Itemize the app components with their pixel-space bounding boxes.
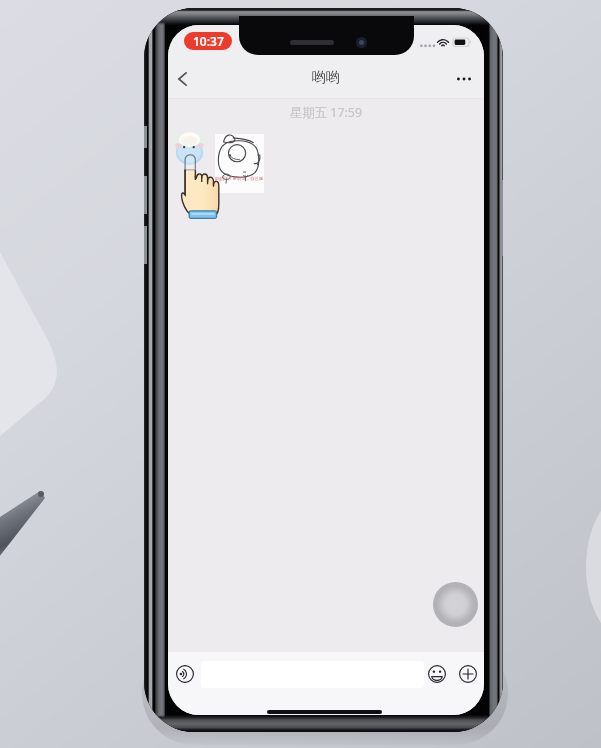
button[interactable]: More options	[446, 61, 482, 97]
button[interactable]: Back	[168, 61, 200, 97]
button[interactable]: Emoji	[423, 660, 451, 688]
staticText: 10:37	[193, 33, 224, 49]
staticText: 哟哟	[312, 69, 340, 87]
staticText: 星期五 17:59	[168, 104, 484, 121]
button[interactable]: Voice message	[171, 660, 199, 688]
staticText: 妈妈说了要听话，自己睡觉	[215, 176, 264, 188]
button[interactable]: Assistive touch	[432, 581, 479, 628]
button[interactable]: Add	[454, 660, 482, 688]
